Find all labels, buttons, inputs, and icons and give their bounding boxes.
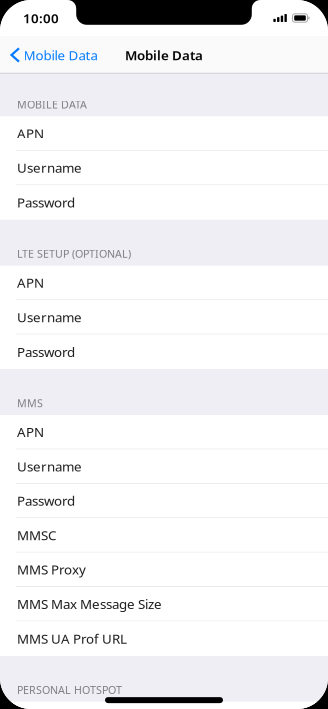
button[interactable]: MMSC <box>0 518 328 553</box>
button[interactable]: Username <box>0 151 328 185</box>
button[interactable]: Username <box>0 300 328 335</box>
staticText: Password <box>17 194 75 211</box>
staticText: Password <box>17 492 75 509</box>
staticText: PERSONAL HOTSPOT <box>17 683 122 697</box>
staticText: MMS UA Prof URL <box>17 630 127 647</box>
staticText: LTE SETUP (OPTIONAL) <box>17 247 131 261</box>
button[interactable]: Mobile Data <box>0 36 106 74</box>
button[interactable]: Password <box>0 484 328 518</box>
staticText: MOBILE DATA <box>17 97 87 111</box>
button[interactable]: APN <box>0 266 328 300</box>
staticText: MMS Proxy <box>17 561 86 578</box>
button[interactable]: MMS Max Message Size <box>0 587 328 621</box>
staticText: Username <box>17 308 82 326</box>
staticText: Mobile Data <box>24 46 98 64</box>
button[interactable]: APN <box>0 116 328 151</box>
staticText: Mobile Data <box>125 46 203 64</box>
staticText: 10:00 <box>23 9 59 27</box>
button[interactable]: Password <box>0 185 328 220</box>
button[interactable]: APN <box>0 415 328 449</box>
staticText: APN <box>17 274 44 291</box>
button[interactable]: MMS Proxy <box>0 553 328 587</box>
button[interactable]: Username <box>0 449 328 484</box>
staticText: MMSC <box>17 526 56 544</box>
button[interactable]: MMS UA Prof URL <box>0 621 328 656</box>
staticText: Username <box>17 159 82 176</box>
staticText: Password <box>17 343 75 361</box>
staticText: APN <box>17 124 44 142</box>
staticText: APN <box>17 423 44 441</box>
staticText: MMS <box>17 396 43 410</box>
staticText: MMS Max Message Size <box>17 595 162 613</box>
button[interactable]: Password <box>0 334 328 369</box>
staticText: Username <box>17 457 82 475</box>
